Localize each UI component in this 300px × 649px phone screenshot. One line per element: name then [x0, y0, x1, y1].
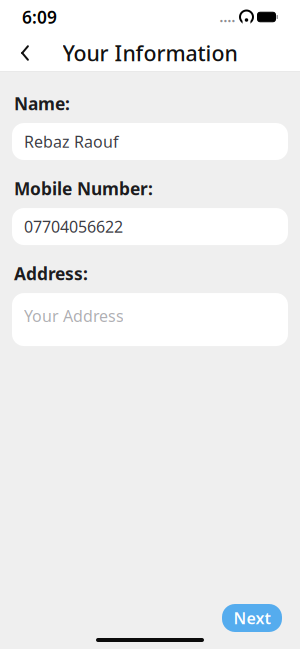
staticText: Next — [233, 607, 270, 629]
button[interactable]: Your Address — [12, 293, 288, 346]
staticText: Your Information — [62, 39, 237, 67]
staticText: Address: — [14, 262, 88, 285]
staticText: 07704056622 — [24, 216, 123, 237]
button[interactable]: Back — [6, 34, 44, 72]
button[interactable]: Next — [222, 604, 282, 632]
staticText: Mobile Number: — [14, 177, 153, 200]
staticText: .... — [219, 8, 235, 26]
staticText: Rebaz Raouf — [24, 131, 119, 152]
button[interactable]: 07704056622 — [12, 208, 288, 245]
button[interactable]: Rebaz Raouf — [12, 123, 288, 160]
staticText: 6:09 — [22, 5, 57, 28]
staticText: Your Address — [24, 305, 124, 326]
staticText: Name: — [14, 92, 70, 115]
